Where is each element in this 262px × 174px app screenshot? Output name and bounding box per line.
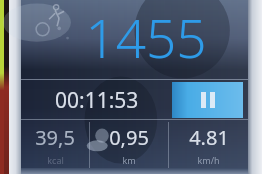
staticText: 39,5 — [35, 124, 75, 151]
staticText: km/h — [197, 154, 220, 166]
button[interactable]: 00:11:53 — [21, 81, 172, 119]
staticText: kcal — [47, 154, 64, 166]
button[interactable]: Pause — [172, 82, 243, 118]
staticText: 1455 — [85, 1, 207, 73]
staticText: 0,95 — [109, 124, 149, 151]
staticText: 00:11:53 — [55, 86, 139, 115]
button[interactable]: 4.81 — [169, 121, 248, 169]
staticText: km — [122, 154, 136, 166]
button[interactable]: 0,95 — [90, 121, 168, 169]
staticText: 4.81 — [189, 124, 229, 151]
button[interactable]: 39,5 — [21, 121, 89, 169]
